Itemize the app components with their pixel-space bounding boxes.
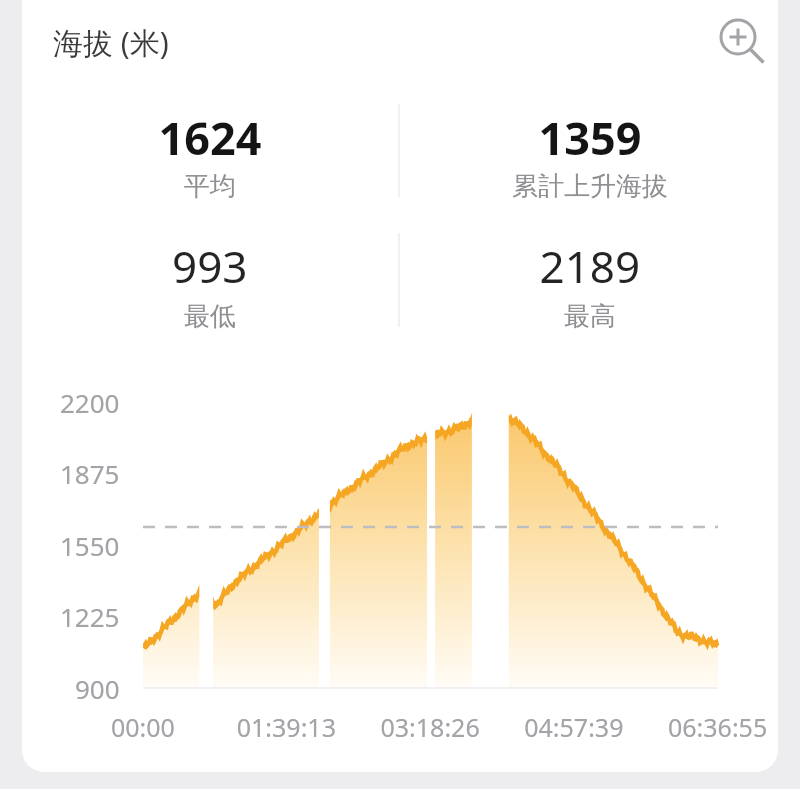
button[interactable]: Zoom in [714, 13, 762, 61]
